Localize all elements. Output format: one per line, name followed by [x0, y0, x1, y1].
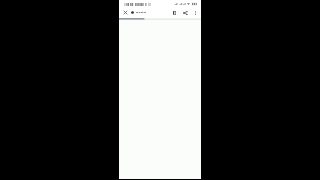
button[interactable]: Bookmark: [170, 8, 179, 17]
button[interactable]: More options: [191, 9, 199, 17]
button[interactable]: Share: [181, 8, 190, 17]
button[interactable]: Close: [121, 8, 130, 17]
button[interactable]: Page info and address: [130, 9, 149, 18]
